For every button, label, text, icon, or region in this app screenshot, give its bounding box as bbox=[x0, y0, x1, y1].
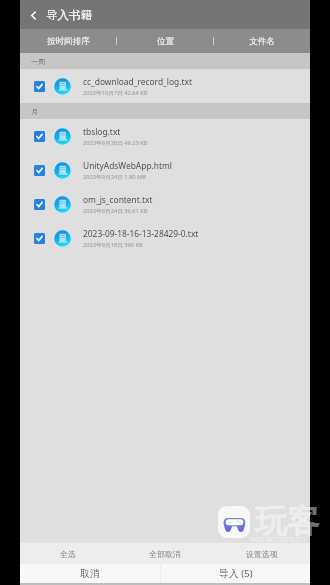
staticText: 玩客 bbox=[255, 501, 319, 541]
staticText: 2023年9月28日 49.23 KB bbox=[83, 139, 148, 147]
staticText: 设置选项 bbox=[246, 549, 278, 559]
staticText: om_js_content.txt bbox=[83, 194, 153, 205]
button[interactable]: 位置 bbox=[117, 29, 213, 53]
staticText: 全选 bbox=[60, 549, 76, 559]
button[interactable]: cc_download_record_log.txt bbox=[20, 69, 310, 103]
staticText: wankr.com.cn bbox=[251, 533, 306, 545]
button[interactable]: 全部取消 bbox=[116, 543, 213, 564]
staticText: 月 bbox=[31, 107, 38, 116]
button[interactable]: 文件名 bbox=[214, 29, 310, 53]
staticText: 2022年10月7日 42.64 KB bbox=[83, 89, 148, 97]
staticText: 2023年9月18日 390 KB bbox=[83, 241, 143, 249]
staticText: 导入 (5) bbox=[219, 567, 253, 580]
button[interactable]: om_js_content.txt bbox=[20, 187, 310, 221]
button[interactable]: 取消 bbox=[20, 564, 160, 583]
staticText: tbslog.txt bbox=[83, 126, 121, 137]
button[interactable]: 全选 bbox=[20, 543, 116, 564]
staticText: 2023年9月24日 36.61 KB bbox=[83, 207, 148, 215]
button[interactable]: 导入 (5) bbox=[161, 564, 310, 583]
staticText: 一周 bbox=[31, 57, 45, 66]
button[interactable]: Back bbox=[20, 2, 46, 28]
button[interactable]: UnityAdsWebApp.html bbox=[20, 153, 310, 187]
staticText: 导入书籍 bbox=[46, 8, 92, 22]
staticText: 文件名 bbox=[249, 36, 275, 47]
staticText: cc_download_record_log.txt bbox=[83, 76, 192, 87]
button[interactable]: tbslog.txt bbox=[20, 119, 310, 153]
staticText: 2023-09-18-16-13-28429-0.txt bbox=[83, 228, 199, 239]
button[interactable]: 设置选项 bbox=[213, 543, 310, 564]
staticText: 全部取消 bbox=[149, 549, 181, 559]
staticText: 取消 bbox=[80, 568, 100, 580]
staticText: UnityAdsWebApp.html bbox=[83, 160, 173, 171]
staticText: 2023年9月24日 1.80 MB bbox=[83, 173, 146, 181]
staticText: 按时间排序 bbox=[47, 36, 90, 47]
button[interactable]: 按时间排序 bbox=[20, 29, 116, 53]
button[interactable]: 2023-09-18-16-13-28429-0.txt bbox=[20, 221, 310, 255]
staticText: 位置 bbox=[157, 36, 174, 47]
